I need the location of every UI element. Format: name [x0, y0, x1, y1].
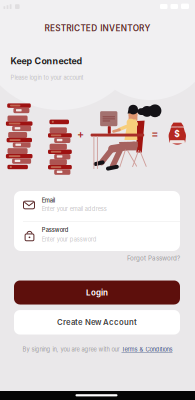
staticText: =	[151, 127, 158, 140]
staticText: Create New Account	[57, 318, 137, 327]
staticText: Enter your email address	[42, 205, 107, 212]
staticText: Enter your password	[42, 236, 97, 243]
staticText: +	[77, 128, 84, 141]
staticText: Please login to your account	[11, 74, 84, 81]
staticText: Password	[42, 226, 69, 233]
staticText: RESTRICTED INVENTORY	[44, 23, 150, 33]
button[interactable]: Forgot Password?	[100, 252, 180, 264]
staticText: By signing in, you are agree with our	[22, 346, 119, 353]
staticText: Email	[42, 197, 55, 204]
staticText: Keep Connected	[11, 56, 83, 66]
button[interactable]: By signing in, you are agree with our	[0, 343, 195, 355]
button[interactable]: Login	[14, 280, 180, 304]
button[interactable]: Create New Account	[14, 310, 180, 335]
staticText: Forgot Password?	[127, 254, 180, 262]
staticText: Login	[86, 288, 108, 297]
staticText: Terms & Conditions	[121, 346, 172, 353]
staticText: $	[174, 129, 180, 139]
